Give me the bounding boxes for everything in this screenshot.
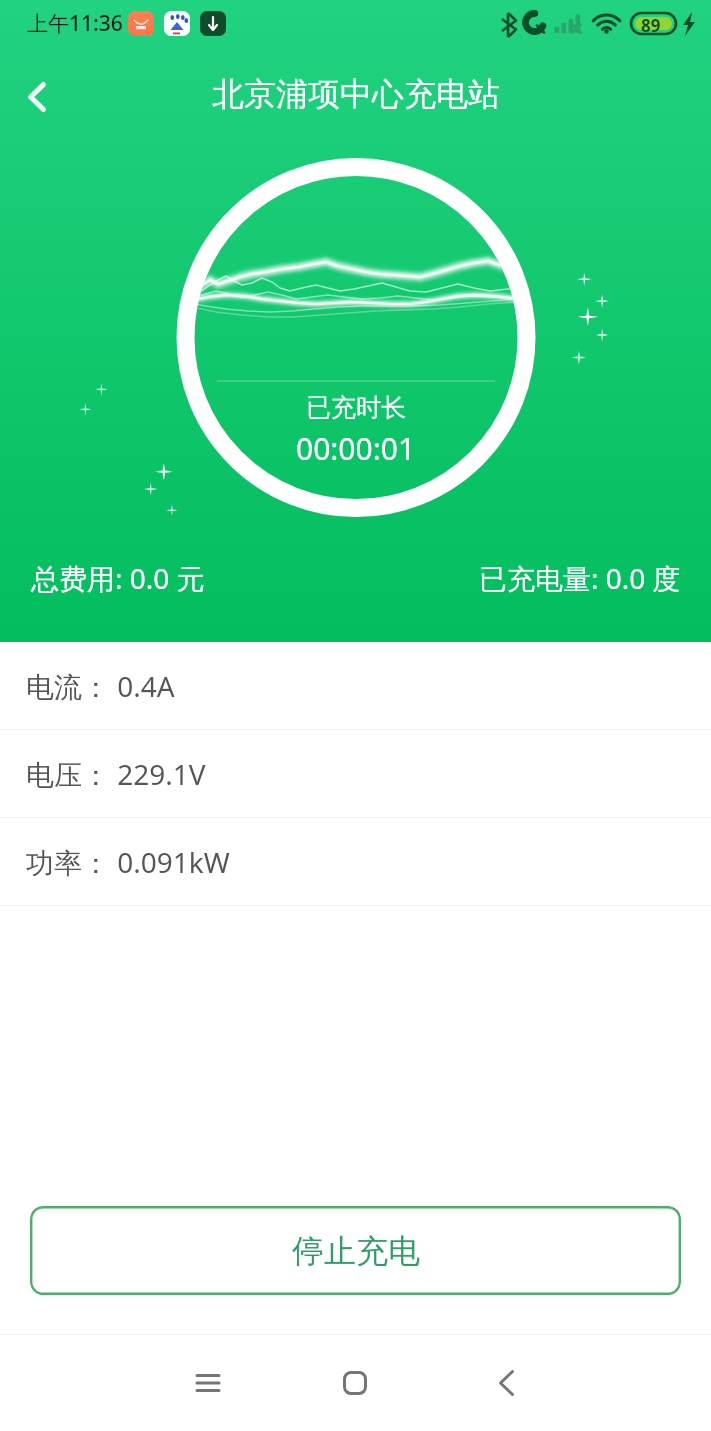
button[interactable]: 电压： 229.1V — [0, 730, 711, 817]
button[interactable]: 停止充电 — [30, 1206, 681, 1295]
button[interactable]: Home — [313, 1341, 397, 1425]
staticText: 功率： 0.091kW — [26, 843, 230, 881]
staticText: 总费用: 0.0 元 — [31, 559, 205, 597]
staticText: 00:00:01 — [296, 428, 416, 469]
button[interactable]: Recent apps — [166, 1341, 250, 1425]
staticText: 停止充电 — [292, 1231, 420, 1271]
staticText: 上午11:36 — [27, 9, 123, 38]
staticText: 已充电量: 0.0 度 — [479, 559, 681, 597]
staticText: 电流： 0.4A — [26, 667, 175, 705]
staticText: 北京浦项中心充电站 — [212, 74, 500, 114]
staticText: 已充时长 — [306, 392, 406, 423]
button[interactable]: Back — [464, 1341, 548, 1425]
staticText: 89 — [641, 14, 661, 37]
staticText: 电压： 229.1V — [26, 755, 206, 793]
button[interactable]: 电流： 0.4A — [0, 642, 711, 729]
button[interactable]: 功率： 0.091kW — [0, 818, 711, 905]
button[interactable]: Back — [0, 59, 75, 135]
